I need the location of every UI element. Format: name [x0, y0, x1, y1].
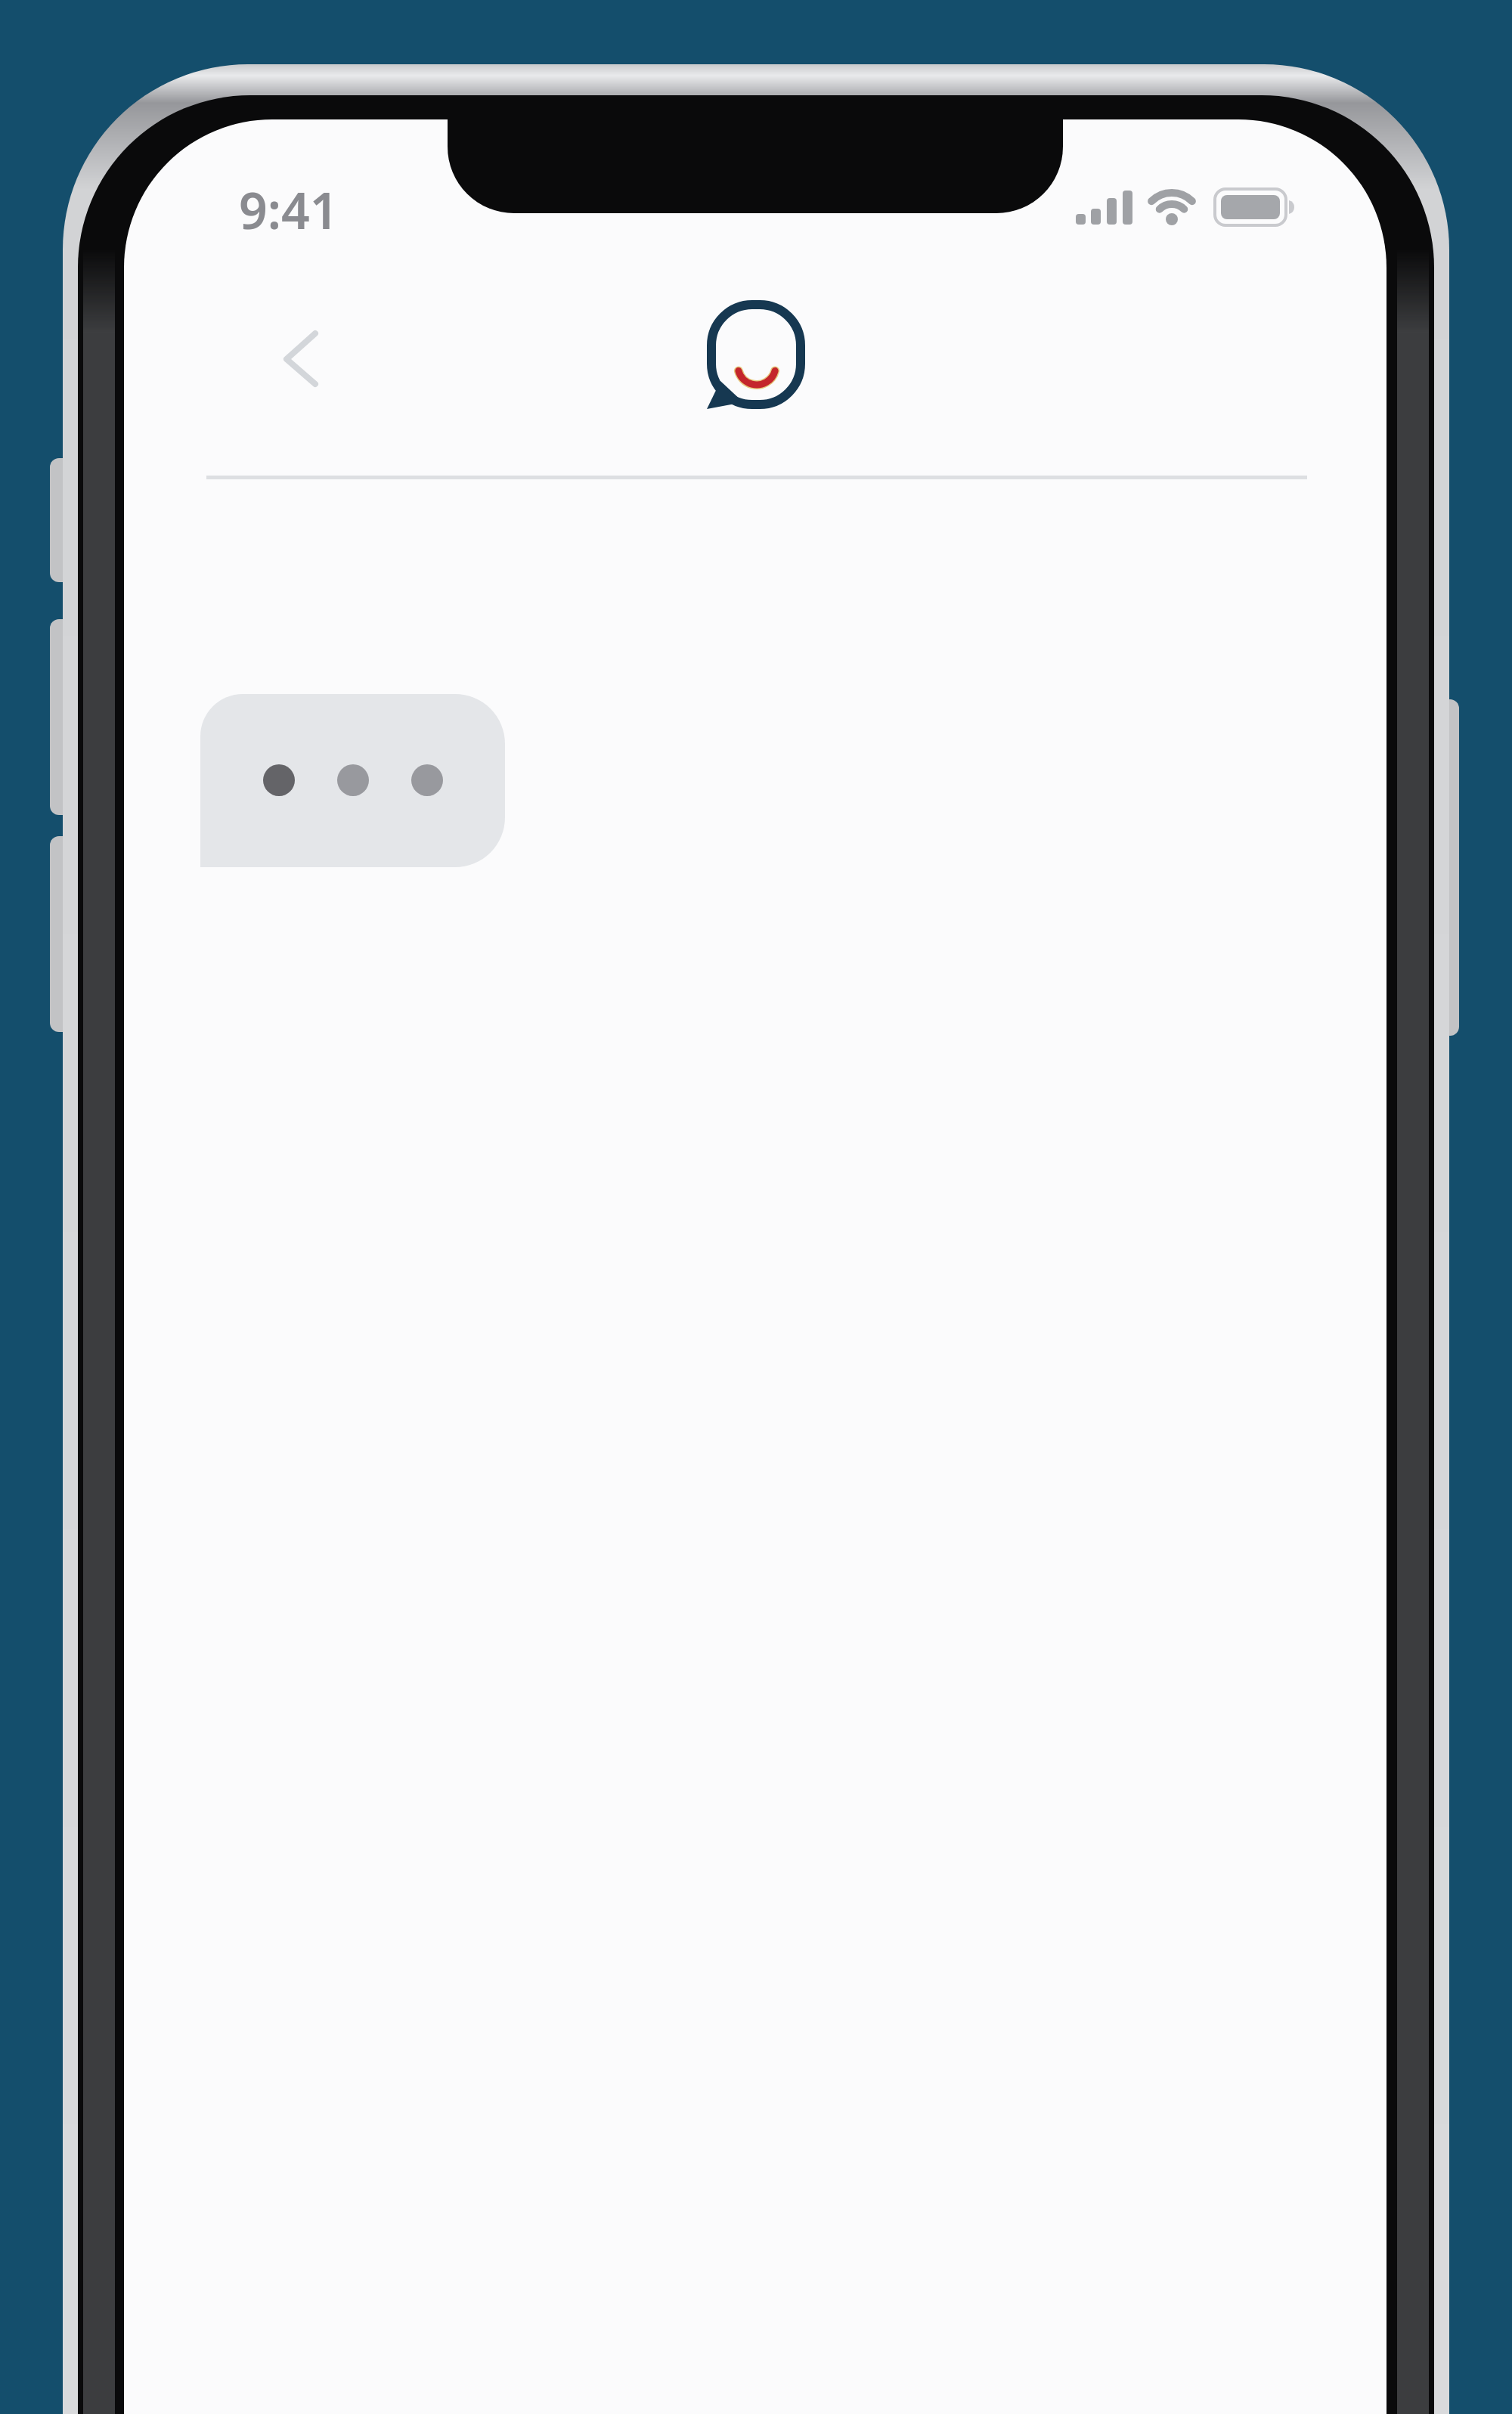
button[interactable] [264, 311, 339, 407]
staticText: 9:41 [239, 175, 339, 243]
